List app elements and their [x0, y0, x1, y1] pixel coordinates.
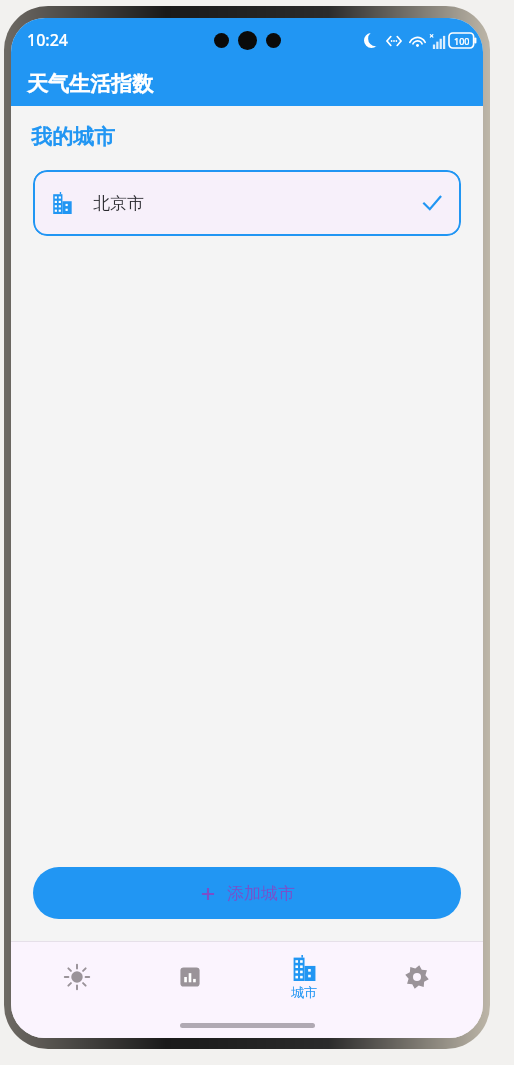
- button[interactable]: 指数: [142, 942, 238, 1012]
- button[interactable]: 设置: [369, 942, 465, 1012]
- staticText: 添加城市: [227, 883, 295, 904]
- staticText: 北京市: [93, 193, 144, 214]
- button[interactable]: 添加城市: [33, 867, 461, 919]
- staticText: 天气生活指数: [27, 71, 153, 97]
- button[interactable]: 北京市: [33, 170, 461, 236]
- staticText: 100: [454, 35, 470, 47]
- button[interactable]: 天气: [29, 942, 125, 1012]
- button[interactable]: 城市: [256, 942, 352, 1012]
- staticText: 城市: [291, 984, 317, 1000]
- staticText: 我的城市: [31, 124, 115, 150]
- staticText: 10:24: [27, 29, 68, 51]
